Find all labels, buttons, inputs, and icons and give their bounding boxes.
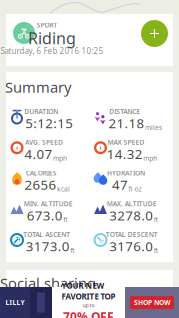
staticText: YOUR NEW FAVORITE TOP	[61, 280, 115, 302]
staticText: 3173.0	[26, 237, 70, 255]
staticText: MIN. ALTITUDE	[24, 199, 73, 208]
button[interactable]: HYDRATION	[89, 163, 173, 193]
staticText: Social sharing	[0, 273, 96, 293]
staticText: mph	[143, 154, 157, 163]
button[interactable]: Advertisement: 70% off	[0, 287, 179, 318]
staticText: 47	[112, 176, 128, 193]
staticText: AVG. SPEED	[25, 138, 63, 147]
staticText: ft	[70, 246, 74, 255]
staticText: TOTAL ASCENT	[23, 230, 70, 239]
button[interactable]: DURATION	[6, 102, 89, 132]
staticText: 673.0	[27, 206, 63, 224]
button[interactable]: DISTANCE	[89, 102, 173, 132]
staticText: 4.07	[25, 145, 53, 163]
button[interactable]: AVG. SPEED	[6, 133, 89, 163]
staticText: mph	[53, 154, 67, 163]
staticText: kcal	[57, 184, 70, 193]
staticText: 70% OFF	[63, 309, 114, 318]
staticText: Summary	[5, 77, 71, 97]
staticText: SPORT	[36, 21, 57, 29]
staticText: SHOP NOW	[134, 298, 170, 307]
staticText: 5:12:15	[25, 114, 73, 132]
button[interactable]: TOTAL ASCENT	[6, 225, 89, 255]
button[interactable]: TOTAL DESCENT	[89, 225, 173, 255]
button[interactable]: MAX SPEED	[89, 133, 173, 163]
staticText: 2656	[25, 176, 57, 193]
staticText: MAX. ALTITUDE	[107, 199, 157, 208]
staticText: Riding	[28, 27, 76, 49]
staticText: Saturday, 6 Feb 2016 10:25	[0, 46, 103, 56]
staticText: ft	[63, 215, 67, 224]
staticText: HYDRATION	[107, 169, 145, 177]
staticText: CALORIES	[26, 169, 57, 177]
staticText: ft	[154, 246, 158, 255]
staticText: miles	[145, 123, 162, 132]
button[interactable]: Add activity	[141, 20, 168, 47]
staticText: LILLY	[5, 298, 24, 307]
staticText: 3278.0	[109, 206, 153, 224]
button[interactable]: CALORIES	[6, 163, 89, 193]
staticText: ft	[154, 215, 158, 224]
staticText: DURATION	[24, 107, 58, 116]
staticText: MAX SPEED	[108, 138, 145, 147]
button[interactable]: MIN. ALTITUDE	[6, 194, 89, 224]
staticText: fl oz	[129, 184, 142, 193]
staticText: 3176.0	[109, 237, 153, 255]
staticText: TOTAL DESCENT	[106, 230, 158, 239]
staticText: 21.18	[108, 114, 144, 132]
staticText: up to	[82, 302, 94, 309]
staticText: 14.32	[107, 145, 143, 163]
staticText: DISTANCE	[109, 107, 140, 116]
button[interactable]: MAX. ALTITUDE	[89, 194, 173, 224]
